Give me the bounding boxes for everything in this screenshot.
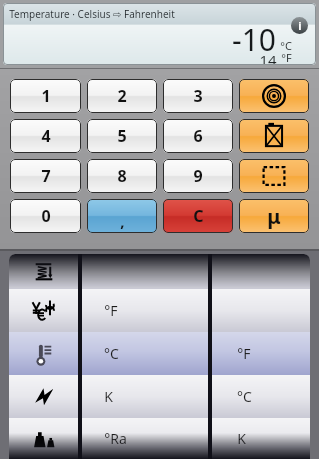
staticText: °C [104, 344, 119, 363]
button[interactable]: Volume [239, 79, 309, 113]
button[interactable]: 8 [87, 159, 157, 193]
button[interactable]: μ [239, 199, 309, 233]
button[interactable]: 7 [10, 159, 81, 193]
staticText: 7 [41, 165, 51, 187]
button[interactable]: 9 [163, 159, 233, 193]
staticText: 4 [41, 125, 51, 147]
button[interactable] [9, 254, 310, 289]
staticText: , [120, 211, 125, 231]
staticText: i [298, 18, 302, 33]
staticText: °F [237, 344, 251, 363]
staticText: 2 [117, 85, 127, 107]
button[interactable]: , [87, 199, 157, 233]
button[interactable]: Area [239, 159, 309, 193]
button[interactable]: 1 [10, 79, 81, 113]
staticText: °C [280, 38, 292, 53]
staticText: C [193, 205, 204, 227]
staticText: °Ra [104, 429, 127, 448]
button[interactable]: 2 [87, 79, 157, 113]
button[interactable]: 5 [87, 119, 157, 153]
button[interactable]: 6 [163, 119, 233, 153]
staticText: K [237, 429, 246, 448]
button[interactable]: °C [9, 332, 310, 375]
staticText: K [104, 387, 113, 406]
staticText: 14 [259, 50, 277, 65]
staticText: °F [281, 50, 292, 64]
button[interactable]: Fuel [239, 119, 309, 153]
button[interactable]: 3 [163, 79, 233, 113]
button[interactable]: K [9, 375, 310, 418]
staticText: 5 [117, 125, 127, 147]
staticText: 1 [41, 85, 51, 107]
staticText: °C [237, 387, 252, 406]
staticText: 0 [41, 205, 51, 227]
staticText: 8 [117, 165, 127, 187]
button[interactable]: Info [291, 17, 308, 34]
button[interactable]: C [163, 199, 233, 233]
button[interactable]: °F [9, 289, 310, 332]
staticText: 3 [193, 85, 203, 107]
button[interactable]: 0 [10, 199, 81, 233]
staticText: -10 [232, 19, 276, 60]
staticText: 6 [193, 125, 203, 147]
button[interactable]: °Ra [9, 418, 310, 459]
staticText: 9 [193, 165, 203, 187]
staticText: μ [267, 203, 281, 230]
button[interactable]: 4 [10, 119, 81, 153]
staticText: °F [104, 301, 118, 320]
staticText: Temperature · Celsius ⇨ Fahrenheit [9, 7, 175, 21]
